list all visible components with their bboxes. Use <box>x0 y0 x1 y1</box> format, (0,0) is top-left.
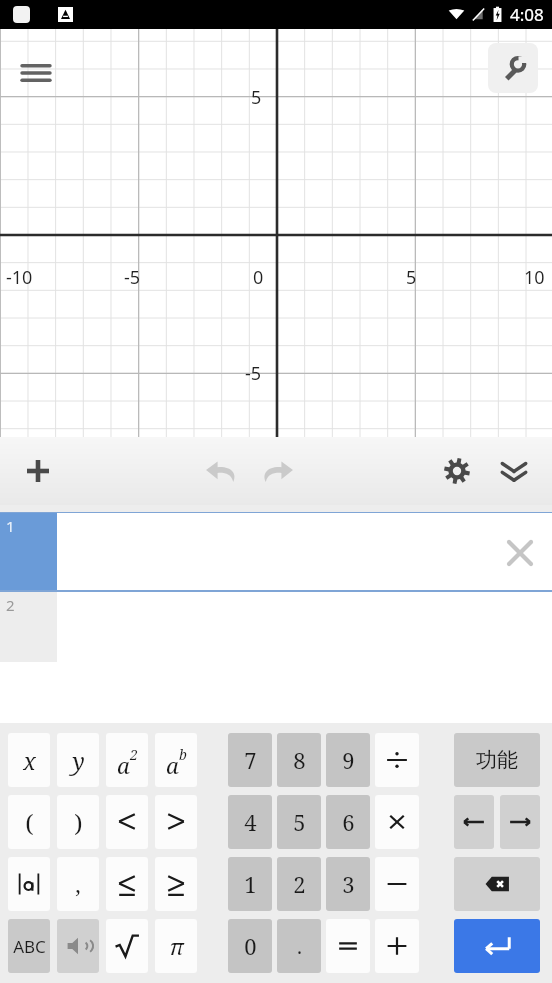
staticText: 2 <box>293 869 306 899</box>
button[interactable]: x <box>8 733 50 787</box>
button[interactable]: Clear <box>57 513 552 592</box>
button[interactable]: Move left <box>454 795 494 849</box>
staticText: b <box>179 745 187 764</box>
button[interactable]: Less than or equal <box>106 857 148 911</box>
button[interactable]: Menu <box>14 51 58 95</box>
staticText: 0 <box>244 931 257 961</box>
staticText: 5 <box>406 265 417 290</box>
staticText: 3 <box>342 869 355 899</box>
staticText: 0 <box>253 265 264 290</box>
button[interactable]: Redo <box>250 437 306 505</box>
button[interactable]: . <box>277 919 321 973</box>
button[interactable]: Greater than <box>155 795 197 849</box>
button[interactable]: Graph settings <box>488 43 538 93</box>
staticText: 5 <box>293 807 306 837</box>
button[interactable]: Divide <box>375 733 419 787</box>
staticText: π <box>169 931 184 961</box>
button[interactable]: y <box>57 733 99 787</box>
button[interactable]: Settings <box>432 437 482 505</box>
staticText: 5 <box>251 85 262 110</box>
button[interactable]: Greater than or equal <box>155 857 197 911</box>
staticText: , <box>75 869 81 899</box>
button[interactable]: , <box>57 857 99 911</box>
staticText: ( <box>25 806 34 839</box>
button[interactable]: Plus <box>375 919 419 973</box>
button[interactable]: π <box>155 919 197 973</box>
button[interactable]: Equals <box>326 919 370 973</box>
button[interactable]: Clear <box>500 533 540 573</box>
button[interactable]: Collapse <box>489 437 539 505</box>
button[interactable]: 7 <box>228 733 272 787</box>
button[interactable]: 2 <box>0 592 57 662</box>
staticText: y <box>72 745 85 776</box>
button[interactable]: a <box>155 733 197 787</box>
staticText: 功能 <box>476 747 518 773</box>
button[interactable]: Less than <box>106 795 148 849</box>
button[interactable]: Absolute value <box>8 857 50 911</box>
button[interactable]: Sound <box>57 919 99 973</box>
staticText: 8 <box>293 745 306 775</box>
staticText: 2 <box>6 595 15 615</box>
staticText: 10 <box>524 265 545 290</box>
button[interactable]: 5 <box>277 795 321 849</box>
staticText: ) <box>74 806 83 839</box>
button[interactable]: Minus <box>375 857 419 911</box>
button[interactable]: ) <box>57 795 99 849</box>
button[interactable]: Move right <box>500 795 540 849</box>
button[interactable]: 1 <box>0 513 57 592</box>
button[interactable]: Backspace <box>454 857 540 911</box>
staticText: . <box>297 933 302 960</box>
button[interactable]: a <box>106 733 148 787</box>
button[interactable]: 6 <box>326 795 370 849</box>
button[interactable]: 0 <box>228 919 272 973</box>
button[interactable]: Multiply <box>375 795 419 849</box>
button[interactable]: ABC <box>8 919 50 973</box>
staticText: -10 <box>6 265 33 290</box>
button[interactable]: 8 <box>277 733 321 787</box>
staticText: -5 <box>245 361 262 386</box>
staticText: 4 <box>244 807 257 837</box>
staticText: 6 <box>342 807 355 837</box>
button[interactable]: 2 <box>277 857 321 911</box>
staticText: -5 <box>124 265 141 290</box>
staticText: 4:08 <box>510 3 544 26</box>
button[interactable]: Enter <box>454 919 540 973</box>
staticText: a <box>166 750 179 780</box>
button[interactable]: Add expression <box>12 437 64 505</box>
staticText: x <box>23 745 36 776</box>
staticText: ABC <box>13 935 46 958</box>
staticText: 9 <box>342 745 355 775</box>
staticText: 1 <box>6 516 15 536</box>
button[interactable]: 9 <box>326 733 370 787</box>
button[interactable]: 4 <box>228 795 272 849</box>
button[interactable]: Undo <box>193 437 249 505</box>
button[interactable]: 1 <box>228 857 272 911</box>
button[interactable]: ( <box>8 795 50 849</box>
button[interactable]: Square root <box>106 919 148 973</box>
staticText: a <box>117 750 130 780</box>
button[interactable]: 功能 <box>454 733 540 787</box>
button[interactable]: 3 <box>326 857 370 911</box>
staticText: 7 <box>244 745 257 775</box>
staticText: 2 <box>130 745 138 764</box>
staticText: 1 <box>244 869 257 899</box>
